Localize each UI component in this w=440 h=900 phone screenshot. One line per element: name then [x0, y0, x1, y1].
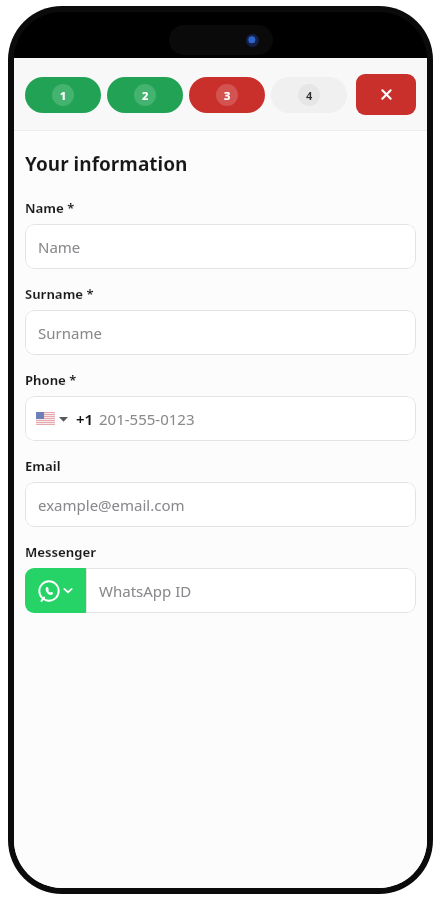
button[interactable]: 1 [25, 77, 101, 113]
staticText: Phone * [25, 371, 77, 389]
staticText: Email [25, 457, 61, 475]
button[interactable]: Select messenger: WhatsApp [25, 568, 86, 613]
button[interactable]: 4 [271, 77, 347, 113]
staticText: example@email.com [38, 495, 185, 515]
staticText: Your information [25, 151, 188, 177]
staticText: Surname [38, 323, 102, 343]
button[interactable]: 3 [189, 77, 265, 113]
staticText: Messenger [25, 543, 97, 561]
staticText: Name [38, 237, 81, 257]
staticText: 1 [60, 88, 67, 103]
button[interactable]: Surname [25, 310, 416, 355]
staticText: 2 [142, 88, 149, 103]
staticText: 3 [224, 88, 231, 103]
button[interactable]: 2 [107, 77, 183, 113]
staticText: 4 [306, 88, 313, 103]
button[interactable]: example@email.com [25, 482, 416, 527]
button[interactable]: +1 [25, 396, 416, 441]
staticText: +1 [76, 409, 94, 429]
button[interactable]: WhatsApp ID [86, 568, 416, 613]
button[interactable]: Name [25, 224, 416, 269]
staticText: 201-555-0123 [99, 409, 195, 429]
staticText: Surname * [25, 285, 94, 303]
staticText: Name * [25, 199, 75, 217]
button[interactable]: Close [356, 74, 416, 115]
staticText: WhatsApp ID [99, 581, 192, 601]
